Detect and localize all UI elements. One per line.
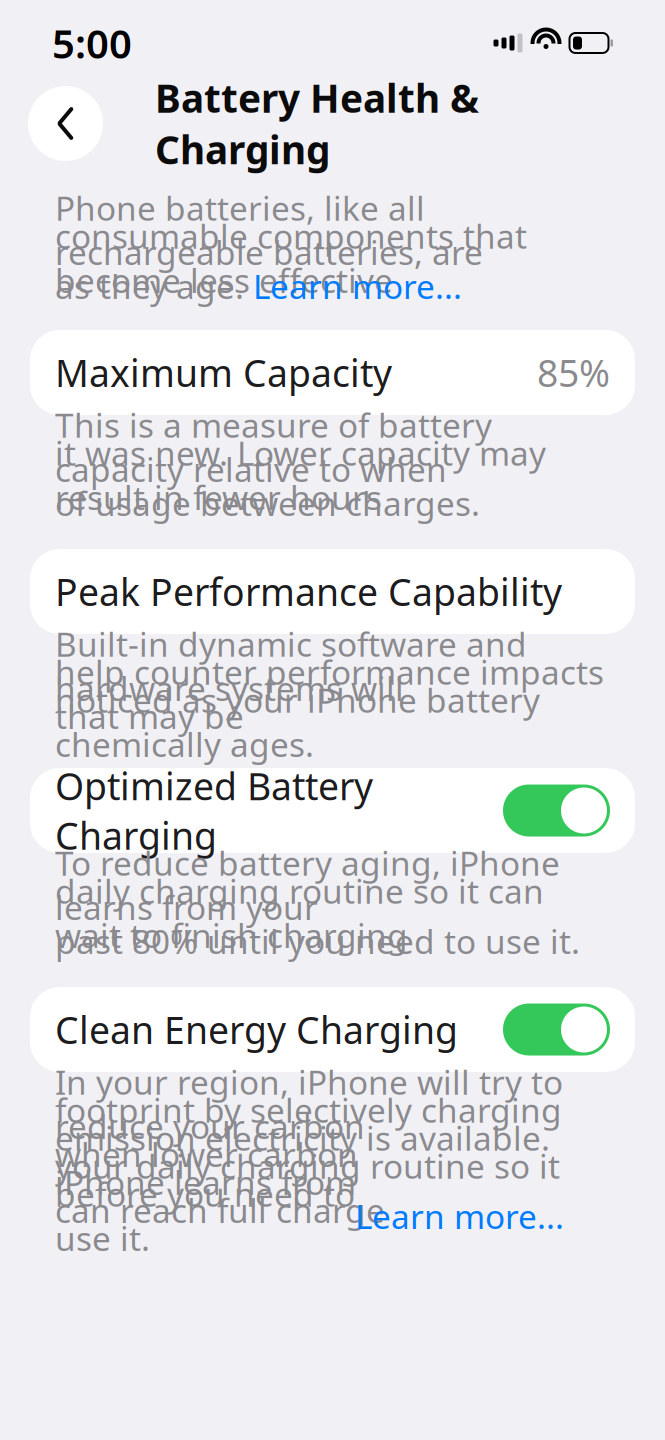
staticText: your daily charging routine so it can re… [55,1144,560,1232]
staticText: Learn more... [355,1194,564,1238]
staticText: of usage between charges. [55,481,480,525]
button[interactable]: Peak Performance Capability [0,549,665,634]
staticText: Battery Health & Charging [155,72,479,175]
button[interactable]: Learn more... [253,264,462,308]
button[interactable]: Maximum Capacity [0,330,665,415]
staticText: Learn more... [253,264,462,308]
staticText: daily charging routine so it can wait to… [55,869,544,957]
staticText: past 80% until you need to use it. [55,919,580,963]
staticText: Peak Performance Capability [55,567,562,616]
button[interactable]: Clean Energy Charging [0,987,665,1072]
staticText: Clean Energy Charging [55,1005,458,1054]
staticText: before you need to use it. [55,1172,355,1260]
staticText: Maximum Capacity [55,348,392,397]
staticText: 85% [537,348,610,397]
staticText: Optimized Battery Charging [55,761,373,860]
button[interactable]: Optimized Battery Charging [0,768,665,853]
staticText: Built-in dynamic software and hardware s… [55,622,527,710]
staticText: footprint by selectively charging when l… [55,1088,562,1176]
staticText: To reduce battery aging, iPhone learns f… [55,841,560,929]
button[interactable]: Learn more... [355,1194,564,1238]
staticText: In your region, iPhone will try to reduc… [55,1060,563,1148]
staticText: it was new. Lower capacity may result in… [55,431,546,519]
button[interactable]: Back [28,86,103,161]
staticText: help counter performance impacts that ma… [55,650,604,738]
staticText: as they age. [55,264,253,308]
staticText: 5:00 [52,16,132,69]
staticText: noticed as your iPhone battery chemicall… [55,678,540,766]
staticText: emission electricity is available. iPhon… [55,1116,550,1204]
staticText: consumable components that become less e… [55,214,527,302]
staticText: This is a measure of battery capacity re… [55,403,492,491]
staticText: Phone batteries, like all rechargeable b… [55,186,483,274]
